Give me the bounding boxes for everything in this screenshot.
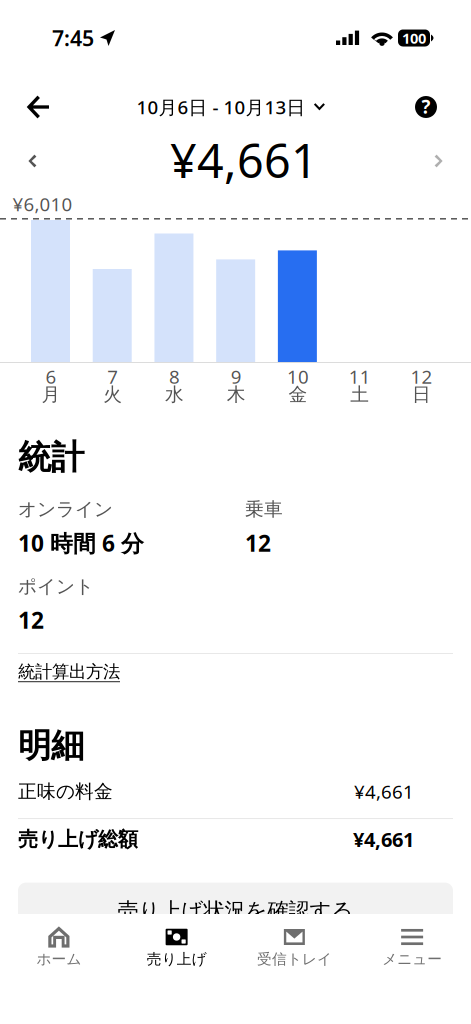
staticText: 10 — [287, 364, 309, 389]
staticText: 売り上げ — [147, 950, 207, 968]
staticText: 10 時間 6 分 — [18, 528, 144, 558]
staticText: 明細 — [18, 725, 84, 766]
button[interactable]: Previous week — [10, 139, 54, 183]
button[interactable]: 売り上げ — [118, 914, 236, 978]
staticText: 12 — [410, 364, 432, 389]
button[interactable]: Help — [404, 85, 448, 129]
staticText: 火 — [103, 383, 122, 406]
button[interactable]: メニュー — [353, 914, 471, 978]
button[interactable]: 受信トレイ — [235, 914, 353, 978]
staticText: ¥4,661 — [353, 826, 414, 853]
staticText: 11 — [349, 364, 371, 389]
staticText: ¥4,661 — [354, 779, 414, 804]
staticText: 土 — [350, 383, 369, 406]
staticText: 水 — [165, 383, 184, 406]
staticText: オンライン — [18, 498, 113, 521]
staticText: 10月6日 - 10月13日 — [136, 95, 305, 119]
staticText: 月 — [42, 383, 61, 406]
staticText: 統計算出方法 — [18, 661, 120, 682]
staticText: 7 — [107, 364, 118, 389]
button[interactable]: Back — [17, 85, 61, 129]
staticText: 金 — [288, 383, 307, 406]
staticText: 売り上げ総額 — [18, 827, 138, 852]
staticText: ¥4,661 — [170, 129, 318, 191]
staticText: 統計 — [18, 437, 84, 478]
button[interactable]: 10月6日 - 10月13日 — [130, 87, 331, 127]
staticText: 100 — [402, 28, 426, 48]
button[interactable]: 統計算出方法 — [18, 658, 120, 685]
staticText: 12 — [18, 605, 44, 635]
staticText: 6 — [46, 364, 57, 389]
staticText: 12 — [245, 528, 271, 558]
button[interactable]: 売り上げ状況を確認する — [18, 883, 453, 939]
staticText: ホーム — [36, 950, 81, 968]
staticText: 売り上げ状況を確認する — [117, 897, 353, 924]
staticText: 7:45 — [52, 24, 94, 52]
staticText: ポイント — [18, 575, 94, 598]
staticText: ¥6,010 — [12, 192, 72, 216]
staticText: 正味の料金 — [18, 780, 113, 803]
staticText: 受信トレイ — [257, 950, 332, 968]
staticText: メニュー — [382, 950, 442, 968]
staticText: 乗車 — [245, 498, 283, 521]
staticText: 木 — [227, 383, 246, 406]
staticText: 9 — [231, 364, 242, 389]
staticText: ? — [421, 94, 430, 119]
button[interactable]: ホーム — [0, 914, 118, 978]
button[interactable]: Next week — [417, 139, 461, 183]
staticText: 8 — [169, 364, 180, 389]
staticText: 日 — [412, 383, 431, 406]
